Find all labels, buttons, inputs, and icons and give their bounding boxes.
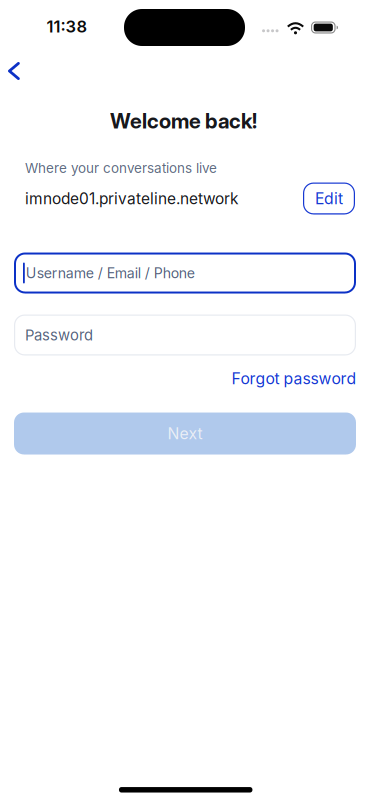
staticText: Where your conversations live: [25, 160, 217, 176]
button[interactable]: Password: [14, 314, 356, 355]
staticText: Next: [167, 424, 202, 443]
staticText: Username / Email / Phone: [26, 264, 195, 281]
staticText: Welcome back!: [110, 108, 257, 134]
button[interactable]: Username / Email / Phone: [14, 252, 356, 293]
staticText: Forgot password: [231, 369, 356, 388]
staticText: Edit: [315, 189, 343, 208]
button[interactable]: Back: [3, 59, 25, 83]
staticText: 11:38: [46, 17, 87, 37]
button[interactable]: Edit: [303, 182, 355, 214]
staticText: imnode01.privateline.network: [25, 189, 238, 208]
button[interactable]: Forgot password: [231, 369, 356, 388]
staticText: Password: [25, 326, 93, 344]
button[interactable]: Next: [14, 412, 356, 454]
